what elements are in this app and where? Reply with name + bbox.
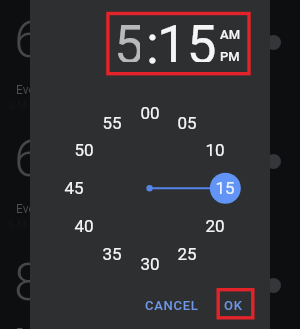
button[interactable]: 15 — [157, 14, 217, 62]
staticText: AM — [220, 27, 241, 41]
button[interactable]: CANCEL — [141, 290, 203, 320]
staticText: 05 — [177, 113, 197, 133]
staticText: 35 — [102, 244, 122, 264]
staticText: 6:30 — [14, 9, 112, 70]
staticText: 5 — [114, 14, 140, 62]
button[interactable]: AM — [220, 27, 244, 41]
button[interactable]: 55 — [96, 111, 128, 135]
staticText: 10 — [205, 140, 225, 160]
button[interactable]: 25 — [171, 242, 203, 266]
button[interactable] — [266, 154, 281, 169]
staticText: 00 — [140, 103, 160, 123]
button[interactable]: PM — [220, 49, 244, 63]
staticText: S M T W T F S — [8, 99, 76, 112]
button[interactable]: 30 — [134, 252, 166, 276]
staticText: 25 — [177, 244, 197, 264]
button[interactable]: 20 — [199, 214, 231, 238]
staticText: Every day — [16, 202, 67, 216]
staticText: Every day — [16, 83, 67, 97]
button[interactable]: 10 — [199, 138, 231, 162]
button[interactable]: 40 — [68, 214, 100, 238]
button[interactable]: 05 — [171, 111, 203, 135]
staticText: 20 — [205, 216, 225, 236]
staticText: : — [146, 14, 159, 76]
staticText: OK — [224, 298, 243, 313]
button[interactable] — [266, 35, 281, 50]
button[interactable]: 45 — [58, 176, 90, 200]
staticText: S M T W T F S — [8, 218, 76, 231]
button[interactable] — [266, 278, 281, 293]
staticText: 45 — [64, 178, 84, 198]
staticText: Every day — [16, 326, 67, 329]
staticText: 30 — [140, 254, 160, 274]
staticText: 40 — [74, 216, 94, 236]
button[interactable]: 5 — [114, 14, 140, 62]
button[interactable]: 35 — [96, 242, 128, 266]
staticText: 6:30 — [14, 128, 112, 189]
staticText: 50 — [74, 140, 94, 160]
staticText: PM — [220, 49, 240, 63]
staticText: 15 — [157, 14, 217, 62]
staticText: 8:30 — [14, 252, 112, 313]
button[interactable]: 50 — [68, 138, 100, 162]
staticText: 55 — [102, 113, 122, 133]
button[interactable]: 15 — [209, 176, 241, 200]
staticText: CANCEL — [145, 298, 199, 313]
button[interactable]: OK — [217, 290, 249, 320]
button[interactable]: 00 — [134, 101, 166, 125]
staticText: 15 — [215, 178, 235, 198]
